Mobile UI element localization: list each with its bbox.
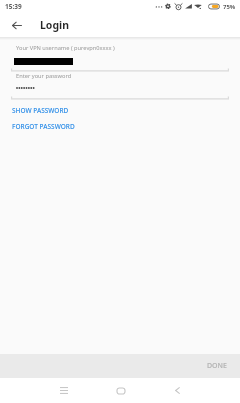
staticText: FORGOT PASSWORD [12,122,75,131]
button[interactable]: Recent apps [52,378,75,403]
button[interactable]: Back [5,13,29,37]
button[interactable]: DONE [194,356,240,376]
staticText: Enter your password [16,72,72,80]
button[interactable]: Back [166,378,189,403]
staticText: SHOW PASSWORD [12,106,69,115]
staticText: Login [40,18,70,32]
staticText: Your VPN username ( purevpn0xxxx ) [16,44,115,52]
button[interactable]: Home [109,378,132,403]
staticText: 75% [223,3,236,11]
button[interactable]: FORGOT PASSWORD [8,119,79,134]
staticText: DONE [207,361,227,371]
button[interactable]: SHOW PASSWORD [8,103,73,118]
staticText: 15:39 [5,2,22,11]
